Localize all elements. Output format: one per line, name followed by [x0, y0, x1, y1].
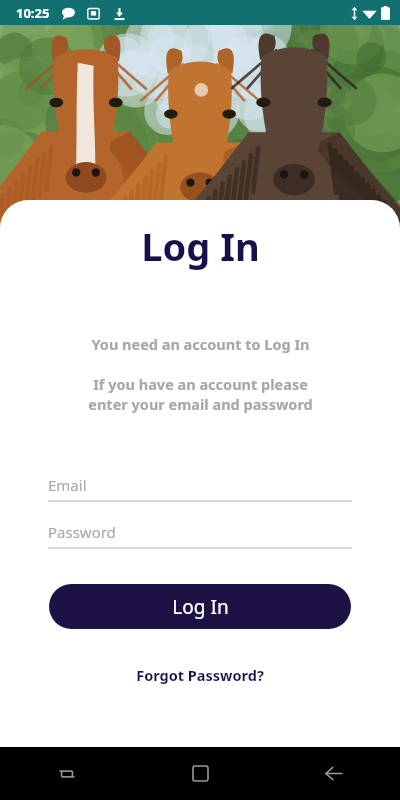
staticText: 10:25	[16, 4, 50, 22]
staticText: Email	[48, 475, 87, 495]
button[interactable]: Recent apps	[0, 747, 134, 800]
staticText: Log In	[172, 594, 229, 620]
staticText: Password	[48, 522, 116, 542]
button[interactable]: Home	[134, 747, 267, 800]
button[interactable]: Forgot Password?	[128, 661, 272, 689]
staticText: Log In	[141, 220, 260, 272]
button[interactable]: Password	[48, 522, 352, 549]
button[interactable]: Back	[267, 747, 400, 800]
staticText: You need an account to Log In	[91, 334, 310, 354]
staticText: Forgot Password?	[136, 665, 264, 685]
button[interactable]: Email	[48, 475, 352, 502]
button[interactable]: Log In	[49, 584, 351, 629]
staticText: If you have an account please enter your…	[88, 374, 313, 415]
